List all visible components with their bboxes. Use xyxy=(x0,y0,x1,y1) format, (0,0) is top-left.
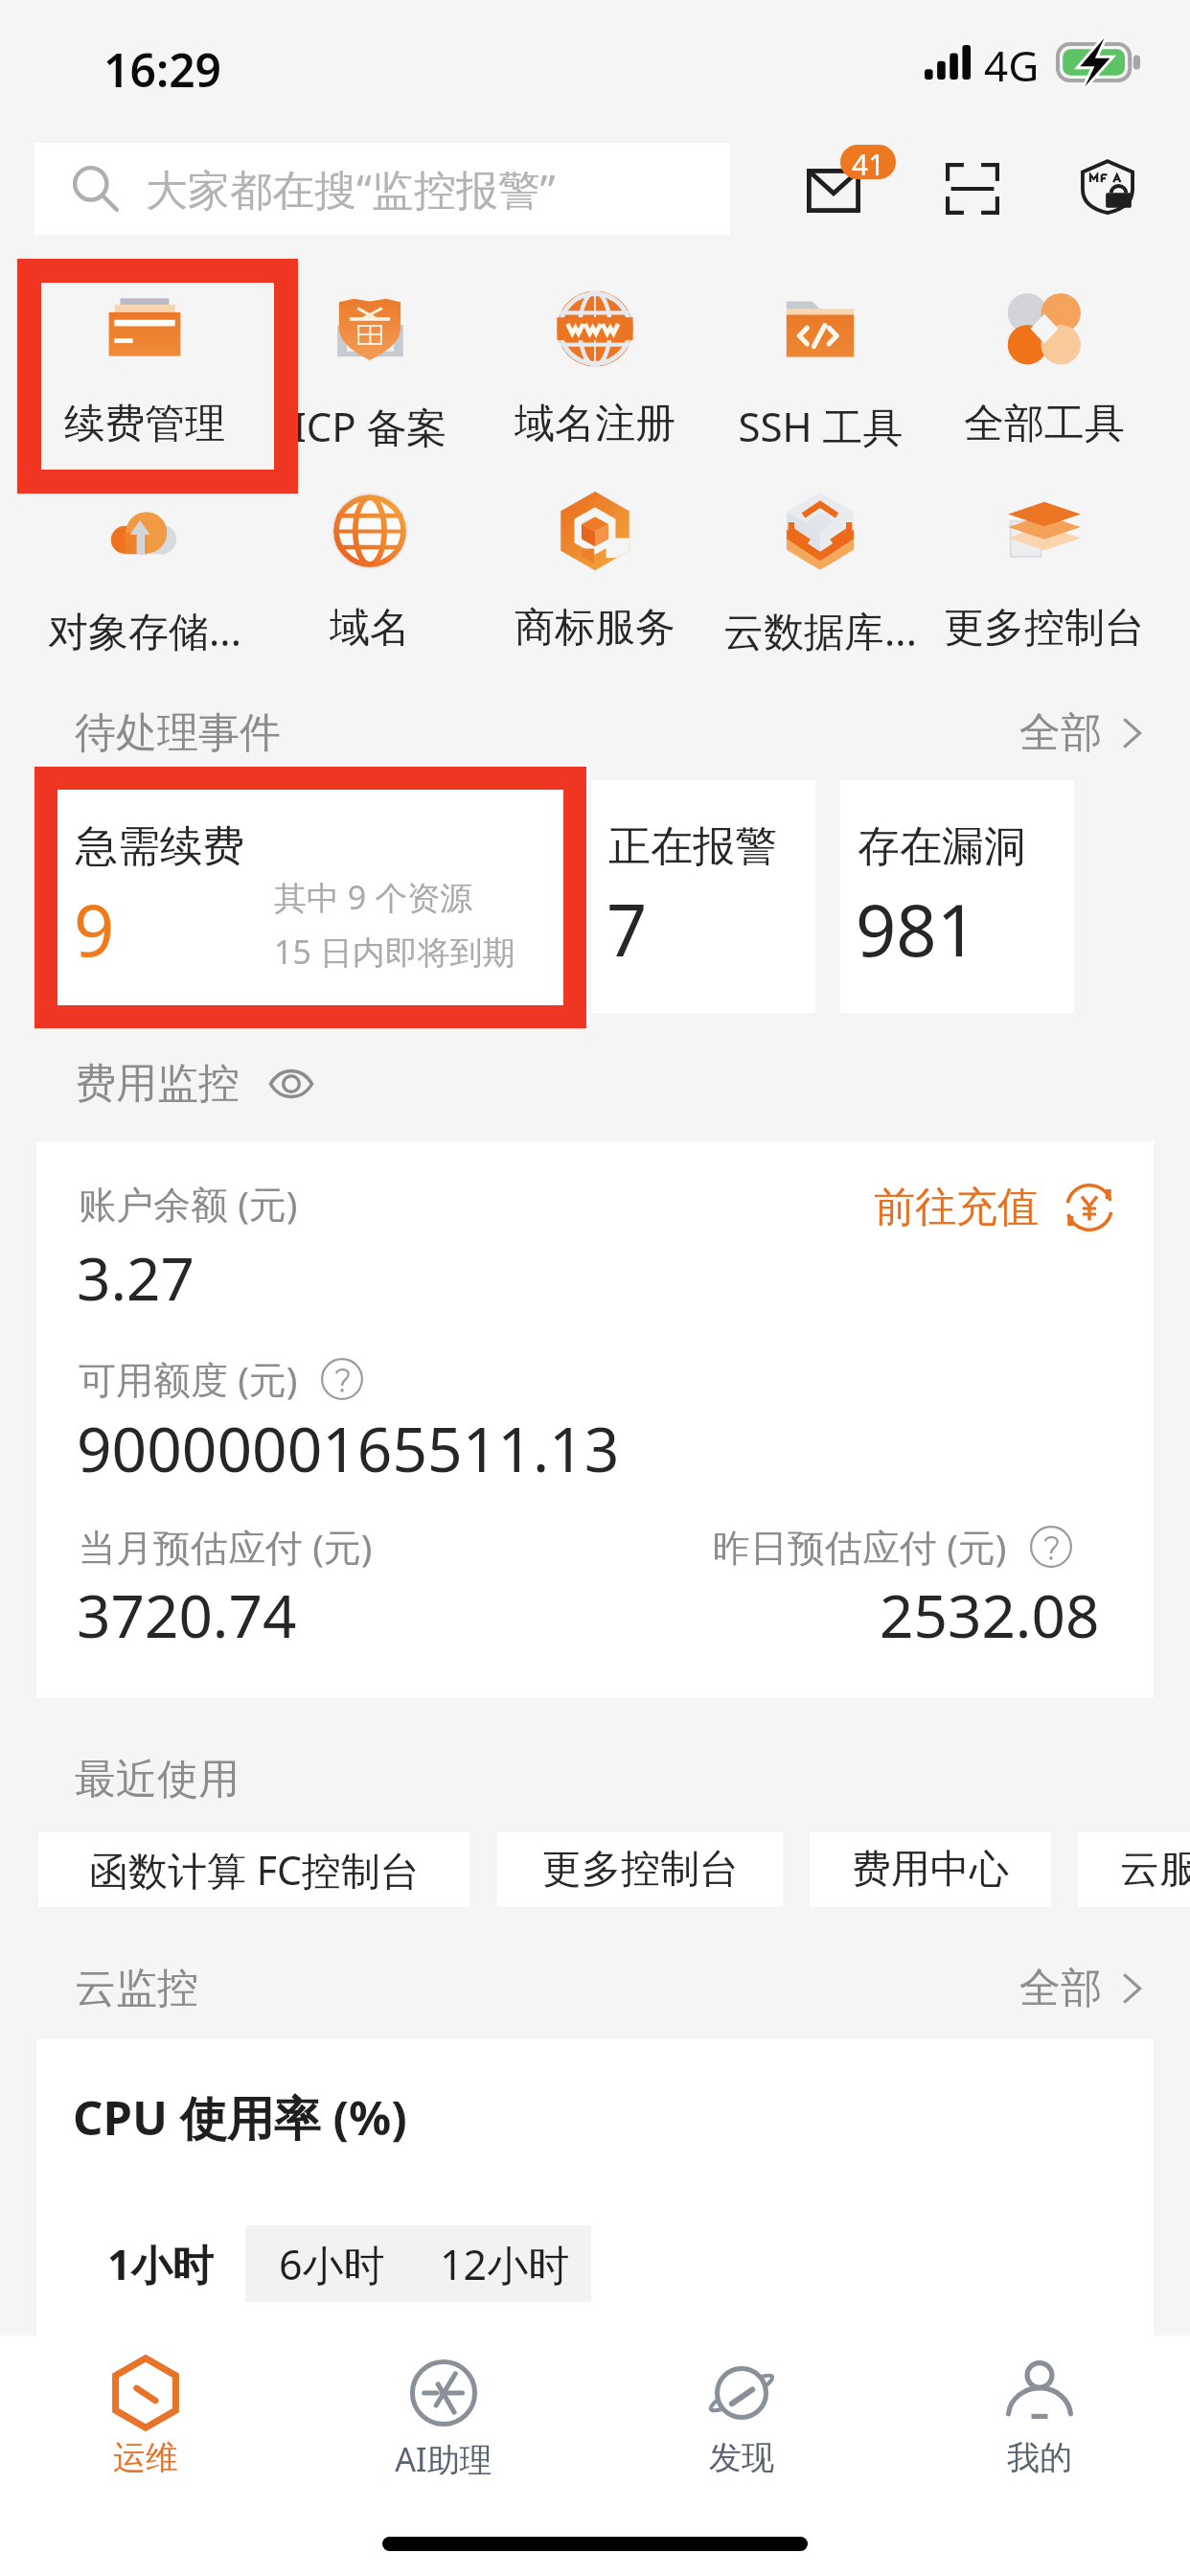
button[interactable] xyxy=(33,479,257,661)
staticText: 域名注册 xyxy=(515,399,675,449)
staticText: 全部 xyxy=(1019,707,1102,759)
button[interactable]: 6小时 xyxy=(245,2225,418,2302)
staticText: 当月预估应付 (元) xyxy=(79,1521,373,1572)
staticText: AI助理 xyxy=(395,2437,492,2481)
staticText: 全部 xyxy=(1019,1963,1102,2014)
staticText: 可用额度 (元) xyxy=(79,1353,298,1404)
staticText: 9000000165511.13 xyxy=(77,1407,620,1490)
staticText: 函数计算 FC控制台 xyxy=(89,1843,420,1897)
staticText: 9 xyxy=(74,881,115,977)
staticText: 账户余额 (元) xyxy=(79,1178,298,1229)
staticText: 12小时 xyxy=(440,2236,570,2292)
button[interactable] xyxy=(932,278,1156,460)
staticText: 更多控制台 xyxy=(944,603,1145,654)
staticText: 最近使用 xyxy=(75,1754,240,1805)
button[interactable]: 正在报警 xyxy=(591,780,815,1013)
button[interactable]: 前往充值 xyxy=(874,1182,1113,1233)
button[interactable] xyxy=(258,479,482,661)
staticText: 前往充值 xyxy=(874,1182,1039,1233)
button[interactable]: MFA security xyxy=(1066,152,1149,219)
staticText: 4G xyxy=(984,36,1040,94)
staticText: 昨日预估应付 (元) xyxy=(713,1521,1007,1572)
button[interactable]: 全部 xyxy=(1019,707,1142,759)
staticText: 续费管理 xyxy=(64,399,225,449)
staticText: 更多控制台 xyxy=(542,1845,739,1895)
staticText: ICP 备案 xyxy=(292,399,447,453)
staticText: 费用中心 xyxy=(852,1845,1009,1895)
staticText: 对象存储... xyxy=(48,603,241,657)
button[interactable]: 1小时 xyxy=(75,2225,245,2302)
staticText: 我的 xyxy=(1007,2437,1072,2478)
button[interactable]: Messages xyxy=(797,160,870,221)
staticText: 正在报警 xyxy=(608,820,777,873)
button[interactable]: Toggle amounts visibility xyxy=(266,1059,316,1109)
staticText: 费用监控 xyxy=(75,1058,240,1110)
button[interactable]: 12小时 xyxy=(418,2225,591,2302)
button[interactable]: 存在漏洞 xyxy=(840,780,1074,1013)
staticText: 981 xyxy=(856,881,977,977)
staticText: 41 xyxy=(852,145,885,179)
staticText: 运维 xyxy=(113,2437,178,2478)
staticText: SSH 工具 xyxy=(738,399,904,453)
button[interactable] xyxy=(708,479,932,661)
staticText: 大家都在搜“监控报警” xyxy=(146,160,556,218)
button[interactable] xyxy=(0,2335,294,2518)
staticText: 6小时 xyxy=(279,2236,385,2292)
button[interactable]: 函数计算 FC控制台 xyxy=(38,1832,469,1907)
button[interactable] xyxy=(483,479,707,661)
button[interactable]: 急需续费 xyxy=(58,780,562,1013)
button[interactable]: 更多控制台 xyxy=(497,1832,783,1907)
button[interactable] xyxy=(708,278,932,460)
button[interactable] xyxy=(258,278,482,460)
button[interactable] xyxy=(891,2335,1188,2518)
button[interactable]: 大家都在搜“监控报警” xyxy=(34,143,730,235)
button[interactable] xyxy=(932,479,1156,661)
staticText: 存在漏洞 xyxy=(858,820,1026,873)
staticText: 2532.08 xyxy=(880,1575,1100,1655)
button[interactable]: Help xyxy=(1028,1524,1074,1570)
button[interactable]: 费用中心 xyxy=(810,1832,1051,1907)
staticText: 云数据库... xyxy=(723,603,917,657)
staticText: 云监控 xyxy=(75,1963,198,2014)
button[interactable] xyxy=(593,2335,890,2518)
staticText: 3720.74 xyxy=(77,1575,297,1655)
button[interactable]: Scan xyxy=(929,154,1016,223)
staticText: 全部工具 xyxy=(964,399,1125,449)
staticText: 急需续费 xyxy=(76,820,244,873)
staticText: 7 xyxy=(606,881,648,977)
button[interactable]: 全部 xyxy=(1019,1963,1142,2014)
staticText: 发现 xyxy=(709,2437,774,2478)
button[interactable] xyxy=(33,278,257,460)
staticText: 3.27 xyxy=(77,1237,195,1318)
staticText: 16:29 xyxy=(103,38,222,101)
staticText: 其中 9 个资源 xyxy=(274,875,473,919)
button[interactable] xyxy=(295,2335,592,2518)
staticText: 15 日内即将到期 xyxy=(274,930,515,974)
staticText: 云服务器 xyxy=(1120,1845,1190,1895)
staticText: 商标服务 xyxy=(515,603,675,654)
button[interactable] xyxy=(483,278,707,460)
staticText: 域名 xyxy=(330,603,410,654)
button[interactable]: Help xyxy=(319,1356,365,1402)
staticText: 待处理事件 xyxy=(75,707,281,759)
staticText: CPU 使用率 (%) xyxy=(73,2085,407,2150)
button[interactable]: 云服务器 xyxy=(1078,1832,1190,1907)
staticText: 1小时 xyxy=(107,2236,214,2292)
